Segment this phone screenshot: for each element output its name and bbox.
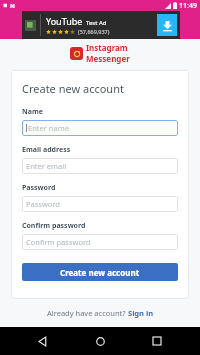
button[interactable]: Password: [22, 196, 178, 212]
staticText: Name: [22, 107, 43, 117]
button[interactable]: Install: [157, 14, 177, 36]
staticText: 11:49: [179, 1, 197, 11]
staticText: YouTube: [46, 15, 83, 27]
staticText: Test Ad: [86, 19, 107, 27]
staticText: Enter email: [26, 161, 67, 171]
button[interactable]: Confirm password: [22, 234, 178, 250]
staticText: Create new account: [60, 267, 140, 278]
staticText: Password: [26, 199, 60, 209]
staticText: (57,669,937): [78, 28, 110, 35]
button[interactable]: Home: [86, 327, 114, 355]
staticText: N: [10, 2, 15, 10]
button[interactable]: Enter email: [22, 158, 178, 174]
staticText: Create new account: [22, 81, 124, 96]
button[interactable]: Advertisement YouTube: [22, 11, 180, 39]
staticText: Enter name: [28, 123, 69, 133]
staticText: Email address: [22, 145, 71, 155]
button[interactable]: Enter name: [22, 120, 178, 136]
staticText: Instagram: [86, 42, 128, 53]
staticText: Already have account?: [47, 308, 128, 318]
button[interactable]: Create new account: [22, 263, 178, 281]
staticText: Confirm password: [22, 221, 86, 231]
staticText: Password: [22, 183, 56, 193]
button[interactable]: Back: [29, 327, 57, 355]
button[interactable]: Already have account?: [0, 308, 200, 318]
button[interactable]: Recent apps: [143, 327, 171, 355]
staticText: Confirm password: [26, 237, 91, 247]
staticText: Sign in: [128, 308, 154, 318]
staticText: Messenger: [86, 53, 130, 64]
